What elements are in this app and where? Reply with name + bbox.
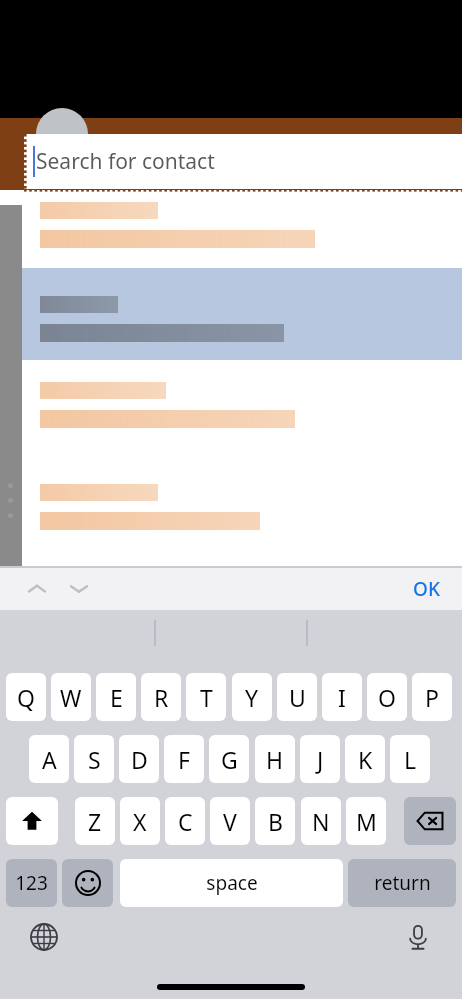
- staticText: 123: [15, 870, 48, 896]
- staticText: I: [338, 682, 346, 713]
- button[interactable]: T: [186, 673, 226, 721]
- staticText: return: [374, 870, 431, 896]
- staticText: Z: [88, 806, 102, 837]
- staticText: O: [378, 682, 396, 713]
- button[interactable]: G: [209, 735, 249, 783]
- button[interactable]: J: [300, 735, 340, 783]
- button[interactable]: D: [119, 735, 159, 783]
- button[interactable]: V: [210, 797, 250, 845]
- button[interactable]: Search for contact: [24, 134, 462, 189]
- button[interactable]: W: [51, 673, 91, 721]
- button[interactable]: C: [165, 797, 205, 845]
- staticText: Q: [17, 682, 35, 713]
- button[interactable]: [22, 268, 462, 360]
- button[interactable]: Z: [75, 797, 115, 845]
- button[interactable]: N: [301, 797, 341, 845]
- staticText: N: [312, 806, 330, 837]
- button[interactable]: O: [367, 673, 407, 721]
- button[interactable]: Q: [6, 673, 46, 721]
- staticText: T: [200, 682, 213, 713]
- staticText: D: [131, 744, 148, 775]
- button[interactable]: [22, 360, 462, 468]
- button[interactable]: Y: [232, 673, 272, 721]
- staticText: B: [268, 806, 283, 837]
- staticText: W: [60, 682, 82, 713]
- button[interactable]: [22, 468, 462, 568]
- button[interactable]: K: [345, 735, 385, 783]
- button[interactable]: space: [120, 859, 343, 907]
- staticText: Y: [245, 682, 259, 713]
- staticText: M: [356, 806, 377, 837]
- staticText: P: [425, 682, 439, 713]
- staticText: OK: [413, 576, 440, 602]
- button[interactable]: R: [141, 673, 181, 721]
- button[interactable]: Dictation: [396, 915, 440, 959]
- button[interactable]: Change keyboard: [22, 915, 66, 959]
- button[interactable]: S: [74, 735, 114, 783]
- button[interactable]: U: [277, 673, 317, 721]
- staticText: X: [133, 806, 147, 837]
- button[interactable]: return: [348, 859, 456, 907]
- button[interactable]: L: [390, 735, 430, 783]
- staticText: E: [110, 682, 123, 713]
- staticText: S: [88, 744, 101, 775]
- button[interactable]: [22, 194, 462, 268]
- button[interactable]: A: [29, 735, 69, 783]
- button[interactable]: Shift: [6, 797, 58, 845]
- staticText: K: [358, 744, 373, 775]
- staticText: U: [289, 682, 306, 713]
- button[interactable]: Emoji: [62, 859, 113, 907]
- staticText: H: [266, 744, 284, 775]
- button[interactable]: OK: [407, 572, 446, 606]
- staticText: V: [223, 806, 237, 837]
- staticText: R: [154, 682, 169, 713]
- staticText: C: [178, 806, 193, 837]
- staticText: Search for contact: [36, 147, 215, 176]
- button[interactable]: P: [412, 673, 452, 721]
- staticText: space: [206, 870, 258, 896]
- button[interactable]: X: [120, 797, 160, 845]
- staticText: L: [404, 744, 417, 775]
- button[interactable]: B: [255, 797, 295, 845]
- staticText: J: [317, 744, 324, 775]
- button[interactable]: M: [346, 797, 386, 845]
- staticText: A: [42, 744, 57, 775]
- button[interactable]: I: [322, 673, 362, 721]
- button[interactable]: Backspace: [404, 797, 456, 845]
- button[interactable]: 123: [6, 859, 57, 907]
- button[interactable]: H: [255, 735, 295, 783]
- button[interactable]: Previous field: [18, 568, 56, 610]
- button[interactable]: E: [96, 673, 136, 721]
- button[interactable]: Next field: [60, 568, 98, 610]
- staticText: F: [178, 744, 190, 775]
- button[interactable]: F: [164, 735, 204, 783]
- staticText: G: [221, 744, 238, 775]
